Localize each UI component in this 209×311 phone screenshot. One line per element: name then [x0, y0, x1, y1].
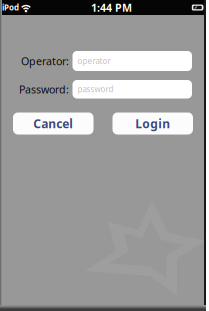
- staticText: Operator:: [21, 54, 69, 68]
- staticText: Cancel: [33, 115, 73, 131]
- button[interactable]: Cancel: [13, 112, 93, 134]
- staticText: 1:44 PM: [91, 0, 132, 15]
- staticText: iPod: [2, 2, 19, 13]
- button[interactable]: Login: [112, 112, 193, 134]
- staticText: password: [77, 84, 113, 94]
- staticText: Password:: [19, 82, 69, 96]
- staticText: operator: [77, 56, 110, 66]
- staticText: Login: [135, 115, 170, 131]
